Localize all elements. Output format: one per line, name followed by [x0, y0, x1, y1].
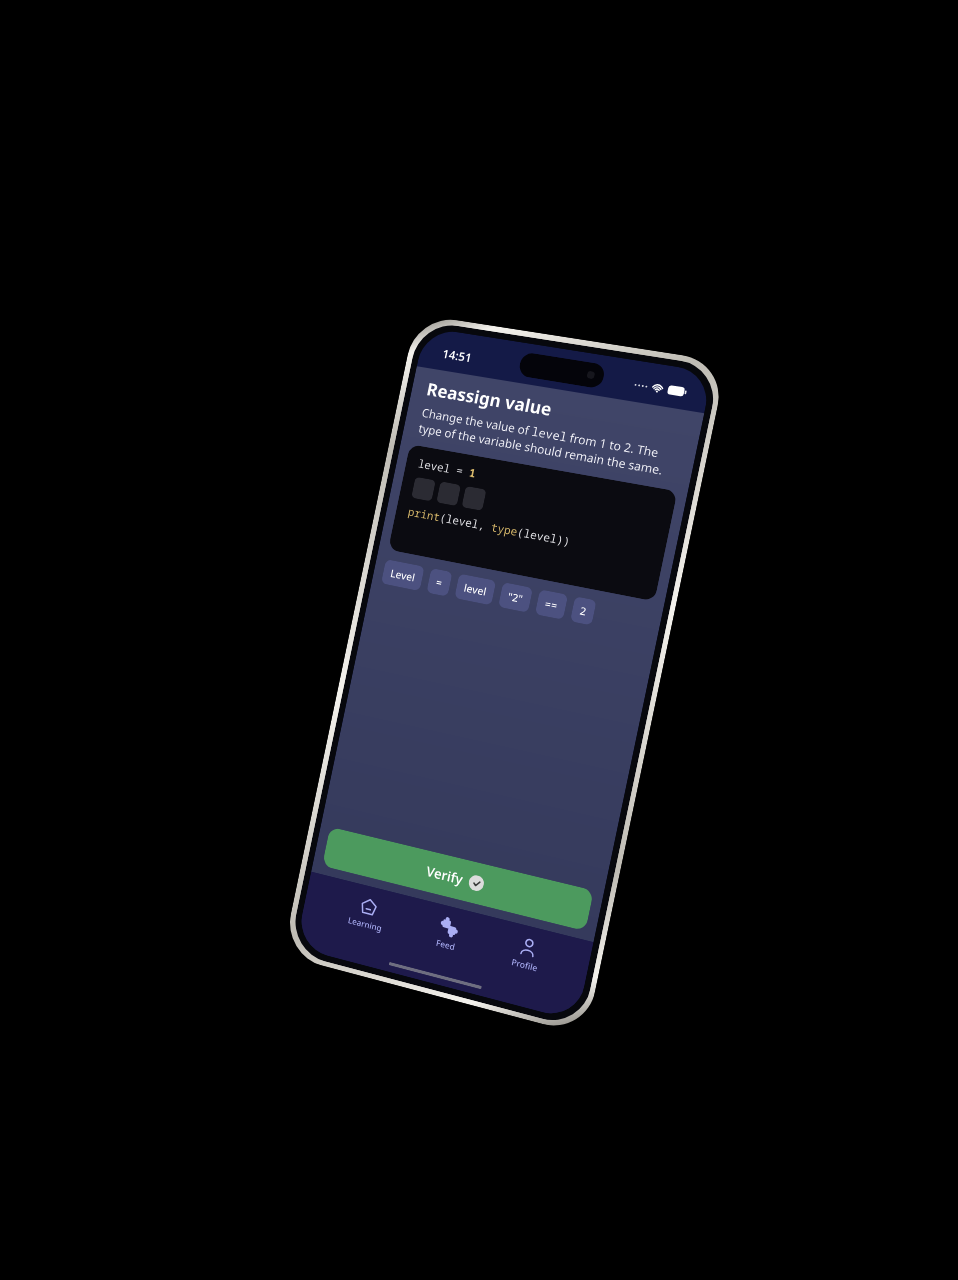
button[interactable]: Verify: [322, 827, 594, 931]
staticText: 14:51: [441, 345, 473, 366]
staticText: 2: [579, 603, 588, 618]
button[interactable]: "2": [498, 582, 533, 613]
button[interactable]: Learning: [337, 889, 397, 939]
button[interactable]: ==: [535, 589, 568, 620]
other: Feed: [439, 916, 460, 938]
button[interactable]: =: [426, 568, 453, 597]
staticText: Verify: [425, 862, 465, 889]
staticText: Change the value of level from 1 to 2. T…: [417, 404, 681, 480]
staticText: print(level, type(level)): [407, 504, 572, 549]
staticText: level = 1: [417, 456, 478, 481]
other: Profile: [518, 936, 539, 959]
staticText: Level: [389, 566, 416, 584]
button[interactable]: Feed: [425, 911, 471, 958]
button[interactable]: [411, 477, 436, 501]
staticText: "2": [507, 589, 524, 606]
button[interactable]: [461, 486, 487, 511]
staticText: ==: [543, 596, 559, 613]
staticText: level: [463, 580, 488, 598]
button[interactable]: [436, 481, 461, 506]
button[interactable]: 2: [570, 596, 597, 626]
staticText: Reassign value: [425, 377, 554, 421]
staticText: Learning: [347, 914, 383, 934]
staticText: =: [435, 575, 444, 590]
staticText: Profile: [511, 956, 539, 974]
staticText: Feed: [435, 937, 456, 952]
button[interactable]: Level: [381, 559, 425, 591]
button[interactable]: Profile: [500, 930, 554, 979]
button[interactable]: level: [454, 573, 496, 605]
other: Learning: [358, 896, 379, 918]
